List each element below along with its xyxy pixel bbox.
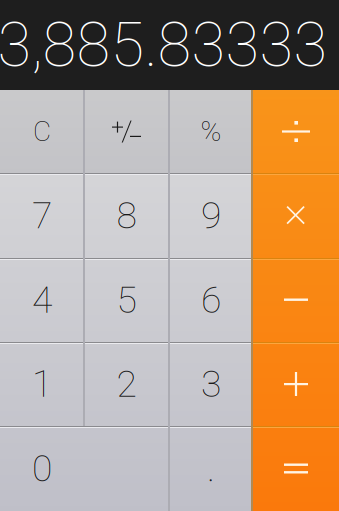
staticText: % (200, 115, 221, 148)
staticText: 2 (116, 362, 136, 406)
button[interactable]: 1 (0, 342, 84, 426)
staticText: . (207, 447, 215, 490)
button[interactable]: 7 (0, 173, 84, 258)
button[interactable]: 2 (84, 342, 169, 426)
button[interactable]: Divide (253, 90, 339, 173)
staticText: 0 (32, 447, 52, 490)
button[interactable]: 3 (169, 342, 253, 426)
button[interactable]: 0 (0, 426, 169, 511)
staticText: 3 (201, 362, 221, 406)
staticText: 7 (32, 194, 52, 237)
staticText: 1 (32, 362, 52, 406)
button[interactable]: Add (253, 342, 339, 426)
button[interactable]: 9 (169, 173, 253, 258)
staticText: 8 (116, 194, 136, 237)
staticText: 3,885.83333 (0, 9, 327, 81)
staticText: 4 (32, 278, 52, 322)
button[interactable]: Multiply (253, 173, 339, 258)
staticText: 9 (201, 194, 221, 237)
staticText: C (33, 115, 51, 148)
button[interactable] (84, 90, 169, 173)
staticText: 6 (201, 278, 221, 322)
button[interactable]: 5 (84, 258, 169, 342)
button[interactable]: 8 (84, 173, 169, 258)
button[interactable]: 4 (0, 258, 84, 342)
button[interactable]: % (169, 90, 253, 173)
button[interactable]: C (0, 90, 84, 173)
staticText: 5 (116, 278, 136, 322)
button[interactable]: Equals (253, 426, 339, 511)
button[interactable]: . (169, 426, 253, 511)
button[interactable]: 6 (169, 258, 253, 342)
button[interactable]: Subtract (253, 258, 339, 342)
